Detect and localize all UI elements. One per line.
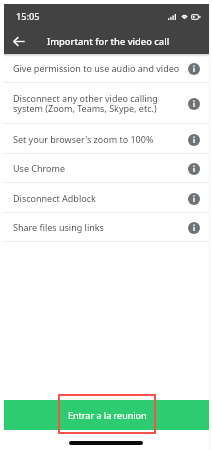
staticText: Disconnect any other video calling syste… [13, 92, 180, 115]
button[interactable]: Entrar a la reunion [4, 400, 209, 430]
button[interactable]: Disconnect Adblock [4, 183, 209, 212]
button[interactable]: Use Chrome [4, 154, 209, 182]
button[interactable]: More information [188, 222, 200, 234]
button[interactable]: More information [188, 193, 200, 205]
staticText: Entrar a la reunion [68, 409, 147, 421]
button[interactable]: Back [6, 29, 31, 54]
staticText: Share files using links [13, 221, 180, 233]
staticText: Use Chrome [13, 162, 180, 174]
button[interactable]: More information [188, 98, 200, 110]
button[interactable]: More information [188, 163, 200, 175]
button[interactable]: Disconnect any other video calling syste… [4, 83, 209, 123]
staticText: 15:05 [16, 10, 40, 23]
staticText: Give permission to use audio and video [13, 62, 180, 74]
button[interactable]: Give permission to use audio and video [4, 54, 209, 82]
staticText: Disconnect Adblock [13, 192, 180, 204]
button[interactable]: Set your browser's zoom to 100% [4, 124, 209, 153]
button[interactable]: Share files using links [4, 213, 209, 241]
button[interactable]: More information [188, 134, 200, 146]
staticText: Set your browser's zoom to 100% [13, 133, 180, 145]
button[interactable]: More information [188, 63, 200, 75]
staticText: Important for the video call [47, 35, 170, 48]
